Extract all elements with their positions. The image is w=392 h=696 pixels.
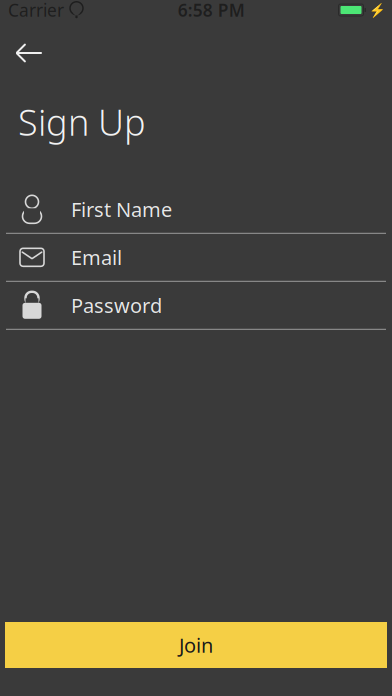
- button[interactable]: Password: [0, 282, 392, 329]
- staticText: Join: [179, 632, 213, 658]
- staticText: Password: [71, 292, 162, 319]
- staticText: Carrier: [8, 0, 64, 21]
- button[interactable]: Email: [0, 234, 392, 281]
- button[interactable]: Join: [5, 622, 387, 668]
- button[interactable]: Back: [6, 32, 52, 74]
- button[interactable]: First Name: [0, 186, 392, 233]
- staticText: First Name: [71, 196, 172, 223]
- staticText: ⚡: [369, 2, 386, 18]
- staticText: 6:58 PM: [178, 0, 245, 21]
- staticText: Email: [71, 244, 122, 271]
- staticText: Sign Up: [18, 98, 146, 146]
